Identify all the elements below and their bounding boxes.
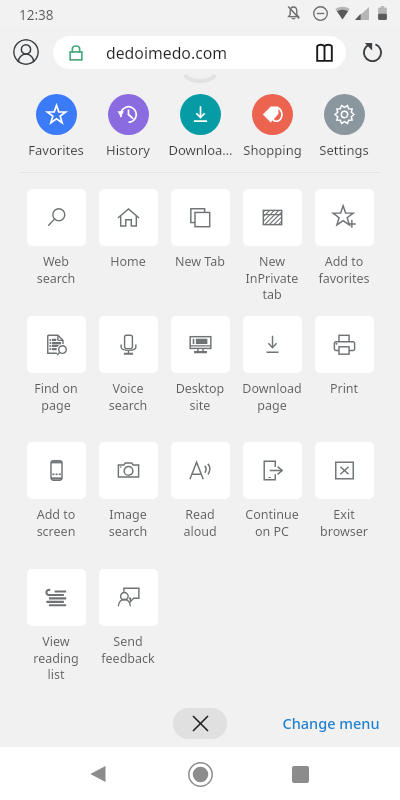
staticText: History bbox=[106, 141, 150, 159]
staticText: Download page bbox=[233, 380, 311, 413]
button[interactable] bbox=[99, 189, 158, 246]
button[interactable]: Shopping bbox=[236, 94, 308, 159]
staticText: Change menu bbox=[282, 713, 380, 733]
staticText: Continue on PC bbox=[233, 506, 311, 539]
button[interactable]: Home bbox=[176, 750, 224, 798]
button[interactable]: Refresh bbox=[358, 38, 386, 66]
button[interactable] bbox=[27, 316, 86, 373]
staticText: Voice search bbox=[89, 380, 167, 413]
staticText: Shopping bbox=[243, 141, 302, 159]
button[interactable]: Favorites bbox=[20, 94, 92, 159]
staticText: Add to favorites bbox=[305, 253, 383, 286]
button[interactable] bbox=[315, 442, 374, 499]
staticText: Print bbox=[305, 380, 383, 397]
staticText: Add to screen bbox=[17, 506, 95, 539]
button[interactable]: Change menu bbox=[282, 713, 380, 733]
staticText: Find on page bbox=[17, 380, 95, 413]
staticText: Home bbox=[89, 253, 167, 270]
button[interactable] bbox=[315, 316, 374, 373]
button[interactable]: Back bbox=[75, 750, 123, 798]
staticText: View reading list bbox=[17, 633, 95, 682]
staticText: Image search bbox=[89, 506, 167, 539]
button[interactable]: dedoimedo.com bbox=[53, 36, 346, 69]
staticText: Favorites bbox=[28, 141, 84, 159]
staticText: New InPrivate tab bbox=[233, 253, 311, 302]
button[interactable]: History bbox=[92, 94, 164, 159]
staticText: Downloa… bbox=[168, 141, 233, 159]
button[interactable] bbox=[99, 569, 158, 626]
button[interactable]: Profile bbox=[13, 39, 39, 65]
button[interactable] bbox=[171, 442, 230, 499]
staticText: Send feedback bbox=[89, 633, 167, 666]
button[interactable] bbox=[27, 189, 86, 246]
button[interactable]: Reading view bbox=[310, 39, 338, 67]
staticText: Settings bbox=[319, 141, 369, 159]
button[interactable]: Recents bbox=[276, 750, 324, 798]
button[interactable] bbox=[99, 442, 158, 499]
staticText: New Tab bbox=[161, 253, 239, 270]
button[interactable]: Settings bbox=[308, 94, 380, 159]
staticText: 12:38 bbox=[19, 6, 54, 24]
button[interactable] bbox=[171, 316, 230, 373]
button[interactable] bbox=[243, 189, 302, 246]
staticText: Desktop site bbox=[161, 380, 239, 413]
button[interactable] bbox=[315, 189, 374, 246]
button[interactable] bbox=[243, 316, 302, 373]
button[interactable]: Downloa… bbox=[164, 94, 236, 159]
staticText: Exit browser bbox=[305, 506, 383, 539]
button[interactable] bbox=[171, 189, 230, 246]
button[interactable]: Close bbox=[173, 708, 227, 739]
staticText: Web search bbox=[17, 253, 95, 286]
staticText: Read aloud bbox=[161, 506, 239, 539]
button[interactable] bbox=[27, 569, 86, 626]
button[interactable] bbox=[243, 442, 302, 499]
button[interactable] bbox=[27, 442, 86, 499]
staticText: dedoimedo.com bbox=[106, 42, 228, 64]
button[interactable] bbox=[99, 316, 158, 373]
